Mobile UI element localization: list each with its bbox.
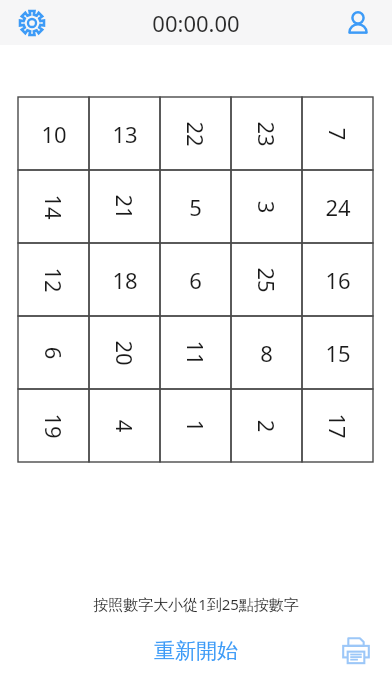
button[interactable]: 重新開始 (138, 632, 254, 670)
staticText: 12 (39, 267, 69, 293)
staticText: 11 (181, 340, 211, 366)
button[interactable]: 1 (160, 389, 231, 462)
staticText: 00:00.00 (152, 8, 240, 38)
staticText: 1 (180, 419, 210, 432)
staticText: 14 (39, 194, 69, 220)
button[interactable]: 17 (302, 389, 373, 462)
button[interactable]: 22 (160, 97, 231, 170)
staticText: 8 (260, 338, 273, 368)
button[interactable]: Settings (12, 3, 52, 43)
staticText: 17 (323, 413, 353, 439)
button[interactable]: 20 (89, 316, 160, 389)
button[interactable]: 25 (231, 243, 302, 316)
staticText: 重新開始 (154, 638, 238, 664)
staticText: 18 (112, 265, 138, 295)
staticText: 7 (322, 127, 352, 140)
button[interactable]: 7 (302, 97, 373, 170)
staticText: 25 (252, 267, 282, 293)
staticText: 4 (109, 419, 139, 432)
staticText: 21 (110, 194, 140, 220)
staticText: 2 (251, 419, 281, 432)
staticText: 19 (39, 413, 69, 439)
button[interactable]: 18 (89, 243, 160, 316)
button[interactable]: 3 (231, 170, 302, 243)
staticText: 5 (189, 192, 202, 222)
button[interactable]: 6 (18, 316, 89, 389)
staticText: 22 (181, 121, 211, 147)
button[interactable]: Print (334, 629, 378, 673)
button[interactable]: 15 (302, 316, 373, 389)
staticText: 10 (41, 119, 67, 149)
button[interactable]: 12 (18, 243, 89, 316)
button[interactable]: 16 (302, 243, 373, 316)
button[interactable]: 19 (18, 389, 89, 462)
staticText: 24 (325, 192, 351, 222)
button[interactable]: 24 (302, 170, 373, 243)
button[interactable]: 5 (160, 170, 231, 243)
button[interactable]: 10 (18, 97, 89, 170)
button[interactable]: 23 (231, 97, 302, 170)
button[interactable]: 8 (231, 316, 302, 389)
button[interactable]: 2 (231, 389, 302, 462)
button[interactable]: 11 (160, 316, 231, 389)
button[interactable]: 13 (89, 97, 160, 170)
button[interactable]: 6 (160, 243, 231, 316)
staticText: 16 (325, 265, 351, 295)
staticText: 6 (38, 346, 68, 359)
staticText: 20 (110, 340, 140, 366)
button[interactable]: Account (338, 3, 378, 43)
button[interactable]: 21 (89, 170, 160, 243)
staticText: 3 (251, 200, 281, 213)
button[interactable]: 14 (18, 170, 89, 243)
staticText: 15 (325, 338, 351, 368)
staticText: 6 (189, 265, 202, 295)
staticText: 13 (112, 119, 138, 149)
staticText: 23 (252, 121, 282, 147)
button[interactable]: 4 (89, 389, 160, 462)
staticText: 按照數字大小從1到25點按數字 (93, 594, 299, 614)
